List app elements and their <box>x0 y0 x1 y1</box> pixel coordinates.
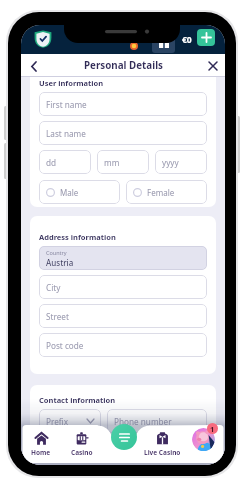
button[interactable]: Menu <box>111 424 137 450</box>
button[interactable]: Phone number <box>107 409 207 433</box>
button[interactable]: Home <box>21 425 61 463</box>
staticText: First name <box>46 99 87 110</box>
staticText: Post code <box>46 340 84 351</box>
staticText: Street <box>46 311 69 322</box>
staticText: Phone number <box>114 416 172 427</box>
staticText: Female <box>147 187 175 198</box>
button[interactable]: Female <box>126 180 207 204</box>
staticText: yyyy <box>162 157 179 168</box>
button[interactable]: Last name <box>39 121 207 145</box>
staticText: mm <box>104 157 120 168</box>
button[interactable]: dd <box>39 150 91 174</box>
staticText: User information <box>39 78 104 88</box>
staticText: Contact information <box>39 395 116 405</box>
staticText: City <box>46 282 61 293</box>
staticText: Last name <box>46 128 86 139</box>
staticText: Country <box>46 249 67 256</box>
staticText: 1 <box>210 424 215 434</box>
staticText: Personal Details <box>84 59 163 72</box>
staticText: €0 <box>182 34 192 46</box>
button[interactable]: Profile <box>192 428 215 451</box>
button[interactable]: Prefix <box>39 409 101 433</box>
button[interactable]: mm <box>97 150 149 174</box>
button[interactable]: Deposit <box>197 29 215 46</box>
staticText: Prefix <box>46 416 69 427</box>
button[interactable]: Post code <box>39 333 207 357</box>
button[interactable]: Street <box>39 304 207 328</box>
staticText: Male <box>60 187 79 198</box>
button[interactable]: First name <box>39 92 207 116</box>
staticText: Address information <box>39 232 116 242</box>
button[interactable]: Close <box>205 58 221 74</box>
staticText: Live Casino <box>144 448 181 457</box>
staticText: Austria <box>46 257 74 267</box>
button[interactable]: City <box>39 275 207 299</box>
button[interactable]: Male <box>39 180 120 204</box>
button[interactable]: Live Casino <box>141 425 184 463</box>
button[interactable]: Wallet <box>152 37 175 53</box>
staticText: Casino <box>71 448 93 457</box>
button[interactable]: yyyy <box>155 150 207 174</box>
button[interactable]: Back <box>25 58 41 74</box>
staticText: dd <box>46 157 57 168</box>
button[interactable]: Country <box>39 246 207 270</box>
staticText: Home <box>31 448 51 457</box>
button[interactable]: Casino <box>61 425 102 463</box>
